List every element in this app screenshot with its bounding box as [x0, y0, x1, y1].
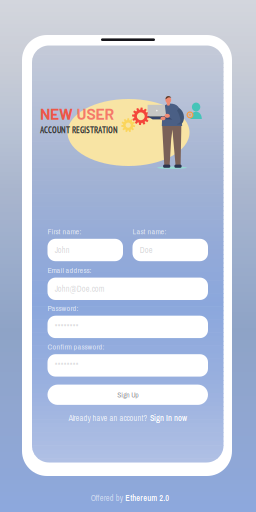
staticText: Last name:: [132, 226, 166, 237]
staticText: ********: [55, 360, 79, 371]
staticText: Ethereum 2.0: [125, 492, 169, 503]
staticText: Confirm password:: [47, 341, 104, 352]
button[interactable]: ********: [47, 316, 208, 338]
staticText: Already have an account?: [68, 412, 147, 423]
staticText: Password:: [47, 303, 78, 313]
staticText: Sign In now: [150, 412, 187, 423]
staticText: ********: [55, 321, 79, 332]
staticText: Offered by: [91, 492, 123, 503]
staticText: First name:: [47, 226, 81, 237]
staticText: John@Doe.com: [55, 283, 105, 294]
staticText: Sign Up: [117, 390, 138, 400]
staticText: USER: [76, 104, 114, 123]
button[interactable]: John@Doe.com: [47, 278, 208, 300]
staticText: NEW: [40, 104, 73, 123]
button[interactable]: Already have an account?: [32, 411, 223, 425]
button[interactable]: ********: [47, 354, 208, 377]
staticText: ACCOUNT REGISTRATION: [40, 124, 118, 135]
staticText: Email address:: [47, 265, 91, 275]
button[interactable]: John: [47, 239, 123, 261]
button[interactable]: Sign Up: [47, 385, 208, 405]
button[interactable]: Doe: [132, 239, 208, 261]
staticText: Doe: [140, 244, 153, 255]
staticText: John: [55, 244, 70, 255]
